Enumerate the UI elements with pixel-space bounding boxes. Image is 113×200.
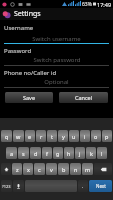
- staticText: h: [67, 150, 71, 157]
- staticText: Phone no/Caller id: [4, 69, 57, 77]
- staticText: e: [28, 133, 32, 140]
- staticText: r: [40, 133, 43, 140]
- button[interactable]: s: [18, 147, 29, 159]
- staticText: m: [85, 166, 91, 173]
- button[interactable]: t: [47, 130, 57, 142]
- button[interactable]: Next: [89, 180, 112, 192]
- staticText: Settings: [14, 9, 41, 19]
- staticText: Switch username: [32, 35, 81, 43]
- staticText: 17:49: [97, 1, 112, 8]
- staticText: Next: [96, 183, 106, 189]
- staticText: y: [62, 133, 65, 140]
- button[interactable]: Switch password: [0, 55, 113, 65]
- staticText: ?123: [2, 184, 11, 189]
- staticText: p: [105, 133, 109, 140]
- button[interactable]: n: [70, 163, 81, 175]
- staticText: z: [16, 166, 19, 173]
- staticText: j: [79, 150, 81, 157]
- button[interactable]: Backspace: [94, 163, 112, 175]
- button[interactable]: x: [23, 163, 33, 175]
- staticText: Password: [4, 47, 32, 55]
- button[interactable]: b: [58, 163, 69, 175]
- button[interactable]: g: [53, 147, 63, 159]
- button[interactable]: c: [34, 163, 45, 175]
- button[interactable]: v: [46, 163, 57, 175]
- button[interactable]: Cancel: [59, 92, 108, 103]
- button[interactable]: Space: [25, 180, 77, 192]
- button[interactable]: Optional: [0, 77, 113, 87]
- staticText: t: [51, 133, 53, 140]
- staticText: .: [82, 183, 84, 190]
- staticText: w: [16, 133, 21, 140]
- button[interactable]: o: [91, 130, 101, 142]
- staticText: f: [46, 150, 48, 157]
- staticText: i: [84, 133, 86, 140]
- button[interactable]: y: [58, 130, 68, 142]
- button[interactable]: Voice input: [13, 180, 24, 192]
- staticText: Optional: [44, 78, 69, 86]
- button[interactable]: Save: [5, 92, 53, 103]
- button[interactable]: h: [64, 147, 74, 159]
- staticText: Username: [4, 24, 34, 32]
- button[interactable]: z: [12, 163, 22, 175]
- button[interactable]: i: [80, 130, 90, 142]
- staticText: u: [72, 133, 76, 140]
- staticText: Cancel: [75, 94, 93, 101]
- staticText: q: [5, 133, 9, 140]
- staticText: a: [10, 150, 14, 157]
- staticText: b: [62, 166, 66, 173]
- button[interactable]: a: [6, 147, 17, 159]
- staticText: n: [74, 166, 78, 173]
- other: App icon: [2, 10, 11, 19]
- button[interactable]: f: [42, 147, 52, 159]
- staticText: o: [94, 133, 98, 140]
- staticText: d: [34, 150, 38, 157]
- button[interactable]: j: [75, 147, 85, 159]
- staticText: g: [56, 150, 60, 157]
- button[interactable]: .: [78, 180, 88, 192]
- button[interactable]: e: [25, 130, 35, 142]
- staticText: x: [27, 166, 30, 173]
- staticText: k: [90, 150, 93, 157]
- button[interactable]: q: [1, 130, 12, 142]
- button[interactable]: u: [69, 130, 79, 142]
- staticText: Save: [23, 94, 36, 101]
- button[interactable]: m: [82, 163, 93, 175]
- button[interactable]: App icon: [0, 8, 113, 20]
- staticText: l: [101, 150, 103, 157]
- staticText: Switch password: [33, 56, 81, 64]
- button[interactable]: p: [102, 130, 112, 142]
- staticText: 63%: [82, 1, 92, 8]
- button[interactable]: Shift: [1, 163, 11, 175]
- button[interactable]: l: [97, 147, 107, 159]
- button[interactable]: d: [30, 147, 41, 159]
- button[interactable]: Switch username: [0, 34, 113, 44]
- button[interactable]: r: [36, 130, 46, 142]
- staticText: c: [38, 166, 41, 173]
- button[interactable]: ?123: [1, 180, 12, 192]
- button[interactable]: k: [86, 147, 96, 159]
- staticText: s: [22, 150, 25, 157]
- button[interactable]: w: [13, 130, 24, 142]
- staticText: v: [50, 166, 53, 173]
